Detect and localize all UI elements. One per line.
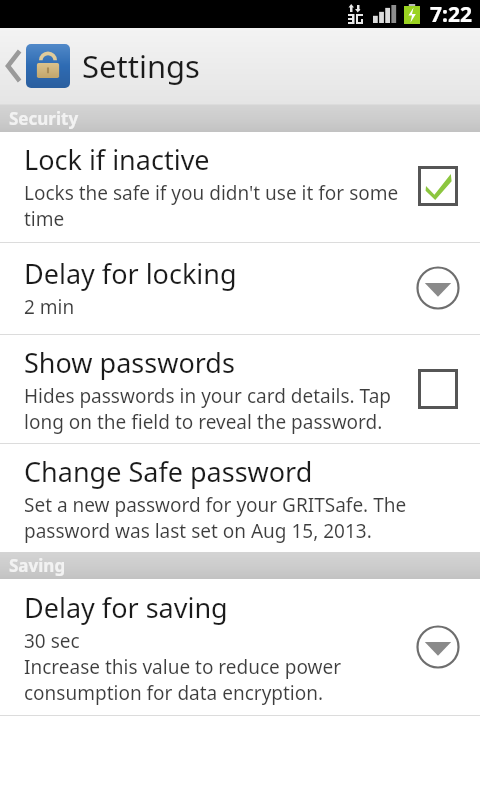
staticText: Lock if inactive — [24, 141, 210, 178]
staticText: Delay for locking — [24, 255, 237, 292]
button[interactable]: Choose delay for saving — [410, 619, 466, 675]
button[interactable]: Change Safe password — [0, 444, 480, 552]
staticText: Saving — [9, 554, 66, 577]
staticText: Settings — [82, 45, 200, 87]
staticText: 30 sec — [24, 628, 80, 654]
button[interactable]: Delay for saving — [0, 579, 480, 715]
button[interactable]: Lock if inactive — [0, 132, 480, 242]
staticText: Set a new password for your GRITSafe. Th… — [24, 492, 466, 543]
staticText: Show passwords — [24, 344, 235, 381]
staticText: 7:22 — [430, 0, 472, 28]
staticText: Hides passwords in your card details. Ta… — [24, 383, 410, 434]
button[interactable]: Choose delay for locking — [410, 260, 466, 316]
staticText: Increase this value to reduce power cons… — [24, 654, 410, 705]
button[interactable]: Show passwords checkbox — [410, 361, 466, 417]
staticText: Delay for saving — [24, 589, 228, 626]
button[interactable]: Navigate up — [0, 38, 206, 94]
button[interactable]: Lock if inactive checkbox — [410, 158, 466, 214]
staticText: Security — [9, 107, 79, 130]
button[interactable]: Delay for locking — [0, 243, 480, 334]
staticText: Locks the safe if you didn't use it for … — [24, 180, 410, 231]
staticText: 2 min — [24, 294, 75, 320]
button[interactable]: Show passwords — [0, 335, 480, 443]
staticText: Change Safe password — [24, 453, 313, 490]
